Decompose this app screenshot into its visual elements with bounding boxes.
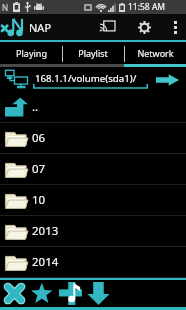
staticText: 2014 <box>32 254 59 270</box>
button[interactable]: Network <box>124 42 186 67</box>
button[interactable]: .. <box>0 92 186 122</box>
staticText: 168.1.1/volume(sda1)/ <box>35 72 137 85</box>
button[interactable]: Go <box>148 67 186 92</box>
staticText: Playing <box>16 47 47 59</box>
button[interactable]: 10 <box>0 185 186 215</box>
button[interactable]: 168.1.1/volume(sda1)/ <box>33 69 148 91</box>
button[interactable]: 07 <box>0 154 186 184</box>
button[interactable]: Cast <box>96 14 118 40</box>
staticText: .. <box>32 99 39 115</box>
button[interactable]: Clear all <box>0 280 28 307</box>
staticText: 2013 <box>32 223 59 239</box>
staticText: 11:58 AM <box>128 1 166 13</box>
staticText: N <box>2 2 9 13</box>
staticText: Network <box>137 47 174 59</box>
button[interactable]: 2014 <box>0 247 186 277</box>
button[interactable]: Settings <box>133 14 155 40</box>
button[interactable]: Network shares <box>0 67 33 92</box>
staticText: 07 <box>32 161 46 177</box>
button[interactable]: Favorites <box>28 280 56 307</box>
staticText: Playlist <box>78 47 108 59</box>
staticText: 10 <box>32 192 46 208</box>
button[interactable]: Add to playlist <box>56 280 84 307</box>
staticText: NAP <box>29 20 52 35</box>
staticText: 06 <box>32 130 46 146</box>
button[interactable]: 06 <box>0 123 186 153</box>
button[interactable]: More options <box>167 14 183 40</box>
button[interactable]: 2013 <box>0 216 186 246</box>
button[interactable]: Playlist <box>62 42 124 67</box>
button[interactable]: Playing <box>0 42 62 67</box>
button[interactable]: Download <box>84 280 112 307</box>
